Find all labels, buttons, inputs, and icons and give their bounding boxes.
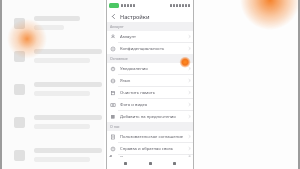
button[interactable]: Back [109,12,118,21]
staticText: Основные [110,56,128,61]
button[interactable]: Recents [121,159,130,168]
staticText: Аккаунт [120,34,188,40]
button[interactable]: Уведомления [106,63,194,74]
button[interactable]: Аккаунт [106,31,194,42]
staticText: О нас [110,124,120,129]
button[interactable]: Back [170,159,179,168]
staticText: Фото и видео [120,102,188,108]
button[interactable]: Конфиденциальность [106,43,194,54]
button[interactable]: Фото и видео [106,99,194,110]
button[interactable]: О нас [106,155,194,157]
button[interactable]: Очистить память [106,87,194,98]
button[interactable]: Пользовательское соглашение [106,131,194,142]
staticText: Аккаунт [110,24,124,29]
staticText: Очистить память [120,90,188,96]
staticText: Справка и обратная связь [120,146,188,152]
staticText: Пользовательское соглашение [120,134,188,140]
button[interactable]: Home [146,159,155,168]
button[interactable]: Справка и обратная связь [106,143,194,154]
staticText: Настройки [120,13,150,20]
staticText: Язык [120,78,188,84]
staticText: Конфиденциальность [120,46,188,52]
staticText: Добавить на предпочтения [120,114,188,120]
staticText: О нас [120,155,188,157]
button[interactable]: Язык [106,75,194,86]
button[interactable]: Добавить на предпочтения [106,111,194,122]
staticText: Уведомления [120,66,188,72]
